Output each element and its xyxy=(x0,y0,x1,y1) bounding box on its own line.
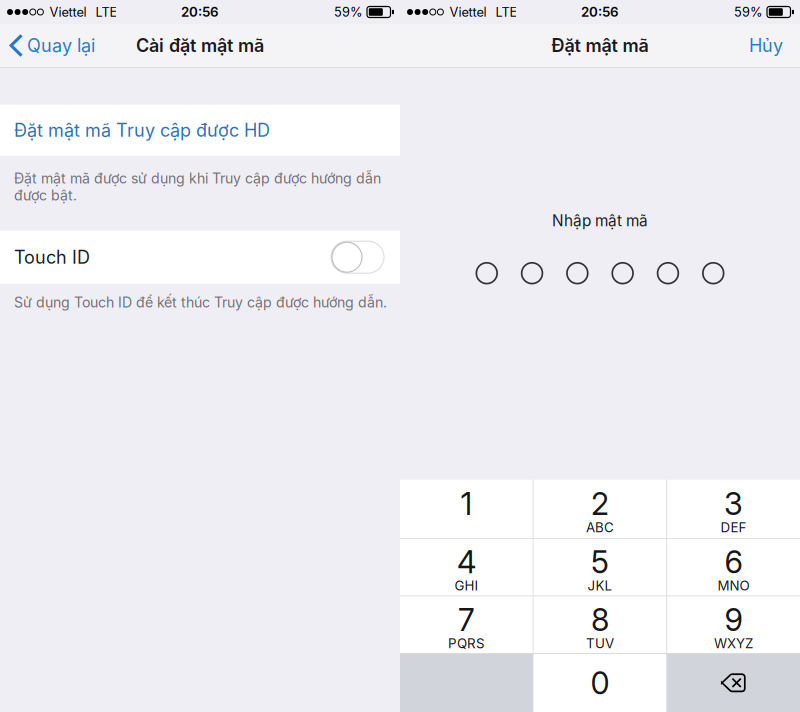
staticText: WXYZ xyxy=(714,635,753,651)
staticText: PQRS xyxy=(448,635,485,651)
staticText: Đặt mật mã Truy cập được HD xyxy=(14,119,270,141)
button[interactable]: Quay lại xyxy=(0,24,105,66)
button[interactable]: 1 xyxy=(400,480,533,538)
staticText: Quay lại xyxy=(27,35,95,56)
staticText: 6 xyxy=(725,544,743,581)
staticText: Cài đặt mật mã xyxy=(136,35,264,56)
button[interactable]: 4 xyxy=(400,539,533,596)
staticText: LTE xyxy=(495,4,517,20)
staticText: TUV xyxy=(586,635,614,651)
staticText: Viettel xyxy=(49,4,86,20)
staticText: Sử dụng Touch ID để kết thúc Truy cập đư… xyxy=(14,294,387,311)
staticText: DEF xyxy=(721,519,747,535)
button[interactable]: 9 xyxy=(667,596,800,653)
button[interactable]: Đặt mật mã Truy cập được HD xyxy=(0,105,400,156)
staticText: 20:56 xyxy=(581,4,619,20)
staticText: Viettel xyxy=(449,4,486,20)
staticText: 0 xyxy=(590,664,609,701)
staticText: Đặt mật mã được sử dụng khi Truy cập đượ… xyxy=(14,170,381,204)
staticText: 5 xyxy=(591,544,609,581)
staticText: 2 xyxy=(591,485,609,522)
staticText: LTE xyxy=(95,4,117,20)
button[interactable]: 0 xyxy=(534,654,666,712)
staticText: 20:56 xyxy=(181,4,219,20)
staticText: MNO xyxy=(718,578,750,594)
button[interactable]: 8 xyxy=(534,596,666,653)
button[interactable]: 2 xyxy=(534,480,666,538)
staticText: Đặt mật mã xyxy=(551,35,648,56)
staticText: 9 xyxy=(725,601,743,638)
staticText: 1 xyxy=(460,485,472,522)
staticText: Hủy xyxy=(749,35,783,56)
staticText: 7 xyxy=(458,601,475,638)
staticText: 4 xyxy=(457,544,476,581)
button[interactable]: 3 xyxy=(667,480,800,538)
button[interactable]: 5 xyxy=(534,539,666,596)
staticText: ABC xyxy=(586,519,614,535)
staticText: 59% xyxy=(334,4,363,20)
button[interactable]: 6 xyxy=(667,539,800,596)
staticText: Touch ID xyxy=(14,246,90,268)
button[interactable]: 7 xyxy=(400,596,533,653)
button[interactable]: Delete xyxy=(667,654,800,712)
staticText: 3 xyxy=(724,485,743,522)
staticText: 59% xyxy=(734,4,763,20)
staticText: GHI xyxy=(454,578,478,594)
button[interactable]: Hủy xyxy=(732,26,800,65)
staticText: 8 xyxy=(591,601,609,638)
staticText: Nhập mật mã xyxy=(552,211,648,230)
button[interactable]: Touch ID xyxy=(0,231,400,284)
staticText: JKL xyxy=(587,578,612,594)
